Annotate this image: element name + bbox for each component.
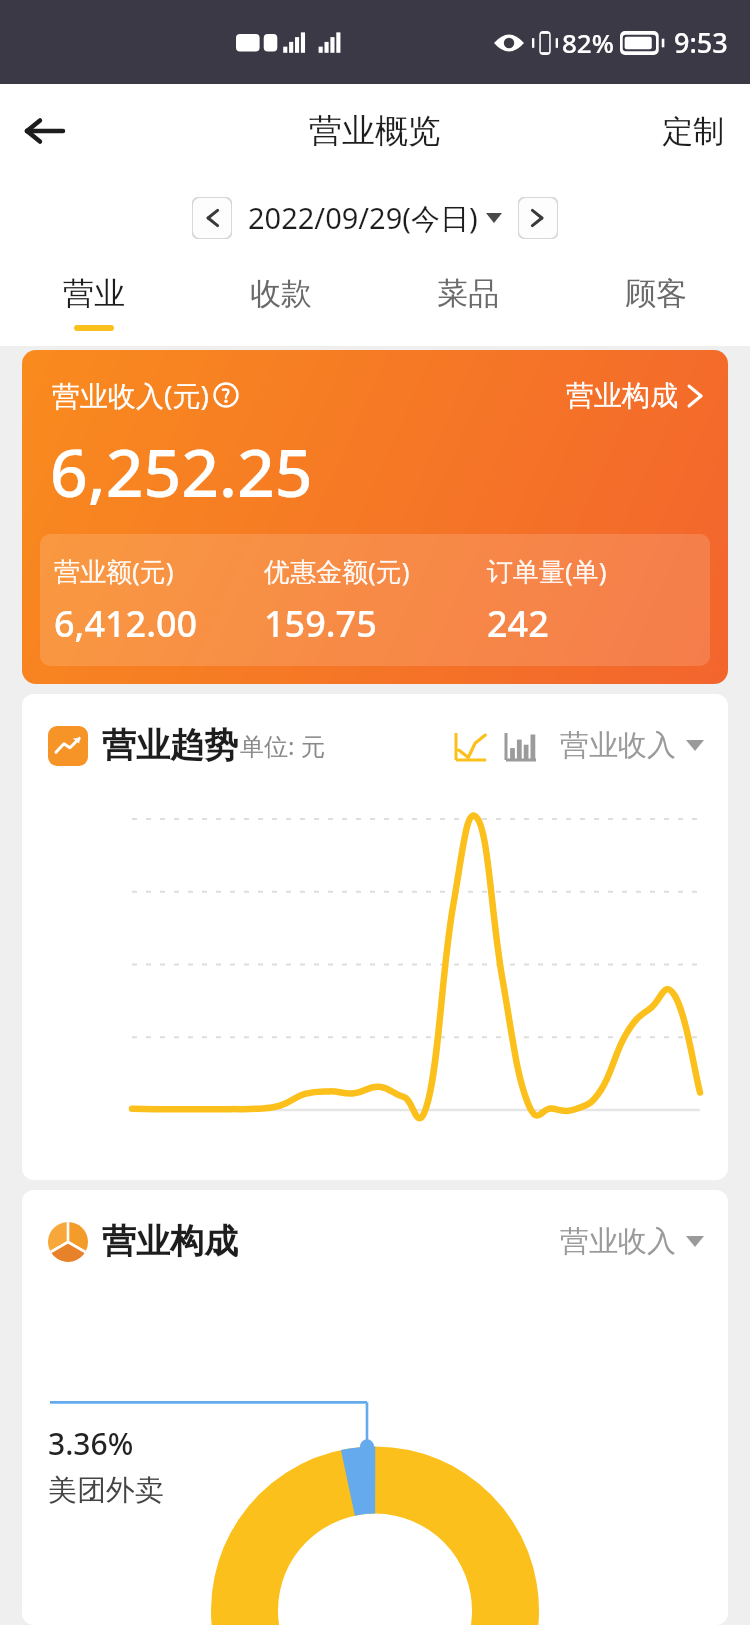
button[interactable]: 营业收入 [560, 1223, 704, 1260]
staticText: 营业趋势 [102, 724, 238, 767]
button[interactable]: Next day [518, 197, 558, 239]
staticText: 6,412.00 [54, 599, 198, 648]
staticText: 定制 [662, 112, 724, 151]
staticText: 单位: 元 [240, 729, 325, 762]
staticText: 3.36% [48, 1423, 134, 1464]
staticText: 82% [562, 25, 614, 60]
button[interactable]: Previous day [192, 197, 232, 239]
button[interactable]: 收款 [187, 258, 374, 346]
button[interactable]: Line chart [454, 729, 488, 763]
staticText: 收款 [250, 274, 312, 313]
staticText: 营业额(元) [54, 553, 174, 589]
button[interactable]: 营业收入(元) [22, 350, 728, 684]
staticText: 菜品 [437, 274, 499, 313]
button[interactable]: Back [14, 100, 76, 162]
staticText: 营业收入(元) [52, 376, 209, 414]
staticText: 242 [487, 599, 549, 648]
staticText: 159.75 [264, 599, 377, 648]
staticText: 顾客 [625, 274, 687, 313]
staticText: 营业 [63, 274, 125, 313]
staticText: 优惠金额(元) [264, 553, 410, 589]
staticText: 营业收入 [560, 727, 676, 764]
button[interactable]: 营业构成 [566, 378, 702, 413]
button[interactable]: Bar chart [504, 729, 538, 763]
button[interactable]: 定制 [636, 98, 750, 165]
staticText: 营业概览 [309, 110, 441, 152]
staticText: 营业构成 [102, 1220, 238, 1263]
staticText: 营业收入 [560, 1223, 676, 1260]
staticText: 2022/09/29(今日) [248, 198, 478, 238]
staticText: 美团外卖 [48, 1472, 164, 1509]
button[interactable]: 营业 [0, 258, 187, 346]
staticText: 订单量(单) [487, 553, 607, 589]
staticText: 6,252.25 [50, 426, 313, 516]
button[interactable]: 营业收入 [560, 727, 704, 764]
button[interactable]: 菜品 [374, 258, 562, 346]
button[interactable]: 2022/09/29(今日) [248, 192, 502, 244]
staticText: 营业构成 [566, 378, 678, 413]
staticText: 9:53 [674, 24, 728, 61]
button[interactable]: 顾客 [562, 258, 750, 346]
